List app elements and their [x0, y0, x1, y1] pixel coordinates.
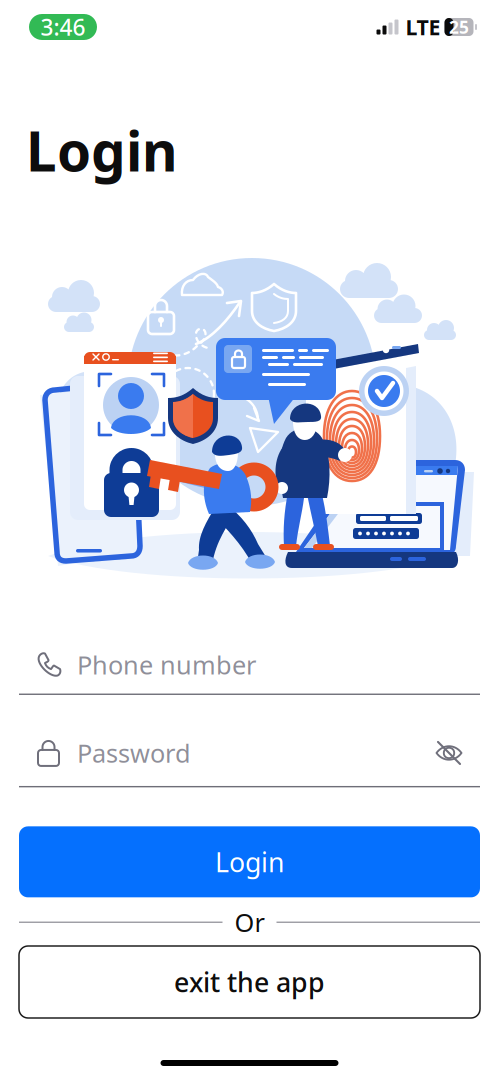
staticText: Phone number [77, 648, 256, 681]
staticText: Login [26, 114, 178, 187]
staticText: Login [215, 844, 284, 880]
staticText: exit the app [174, 964, 325, 1000]
button[interactable]: Login [19, 826, 480, 897]
button[interactable]: Show password [434, 738, 480, 768]
button[interactable]: exit the app [19, 946, 480, 1018]
staticText: Or [234, 905, 264, 939]
staticText: 3:46 [40, 12, 85, 42]
staticText: 25 [449, 15, 469, 38]
staticText: LTE [405, 13, 440, 41]
staticText: Password [77, 736, 191, 770]
